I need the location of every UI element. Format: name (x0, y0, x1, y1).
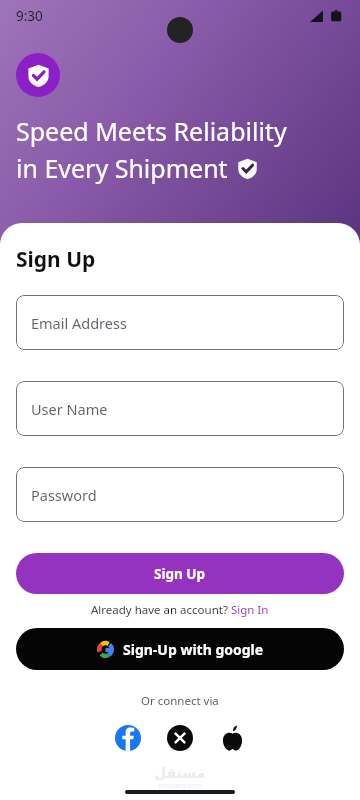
button[interactable]: Sign up with Facebook (111, 721, 145, 755)
button[interactable]: Email Address (16, 295, 344, 350)
staticText: مستقل (154, 765, 206, 781)
button[interactable]: Sign Up (16, 553, 344, 594)
staticText: in Every Shipment (16, 151, 228, 185)
staticText: Email Address (31, 313, 127, 333)
staticText: Or connect via (141, 693, 219, 709)
staticText: 9:30 (16, 7, 43, 25)
staticText: Sign Up (16, 245, 96, 274)
staticText: Speed Meets Reliability (16, 114, 287, 148)
button[interactable]: User Name (16, 381, 344, 436)
button[interactable]: Sign-Up with google (16, 628, 344, 670)
other: App logo (16, 53, 60, 97)
staticText: mostaql.com (159, 781, 202, 791)
staticText: Already have an account? Sign In (91, 602, 269, 618)
staticText: User Name (31, 399, 108, 419)
staticText: Sign Up (154, 565, 206, 583)
button[interactable]: Sign up with Apple (215, 721, 249, 755)
staticText: Sign-Up with google (123, 640, 264, 659)
staticText: Password (31, 485, 97, 505)
button[interactable]: Sign up with X (163, 721, 197, 755)
button[interactable]: Already have an account? Sign In (16, 602, 344, 618)
button[interactable]: Password (16, 467, 344, 522)
